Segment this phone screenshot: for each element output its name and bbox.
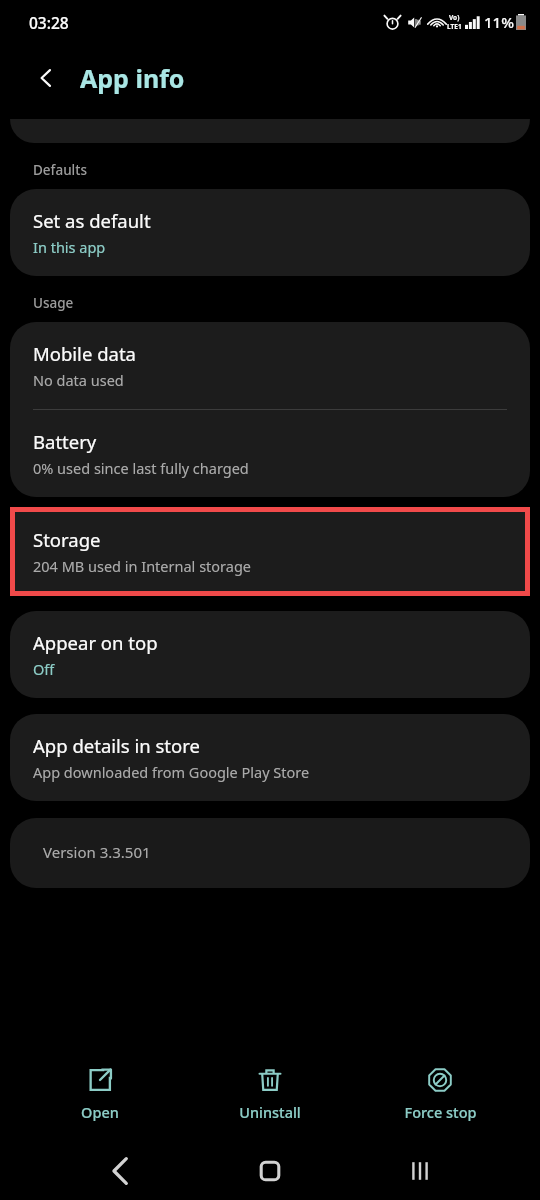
staticText: 204 MB used in Internal storage — [33, 556, 252, 576]
button[interactable]: Storage — [10, 507, 530, 596]
button[interactable]: Version 3.3.501 — [10, 818, 530, 888]
staticText: Appear on top — [33, 630, 158, 655]
staticText: Force stop — [404, 1102, 477, 1122]
staticText: Battery — [33, 429, 97, 454]
button[interactable]: Home — [241, 1142, 299, 1200]
button[interactable]: Recents — [391, 1142, 449, 1200]
button[interactable]: Battery — [10, 410, 530, 497]
button[interactable]: Set as default — [10, 189, 530, 276]
button[interactable]: Open — [30, 1059, 170, 1130]
staticText: 11% — [484, 12, 514, 32]
staticText: 0% used since last fully charged — [33, 458, 249, 478]
staticText: App details in store — [33, 733, 200, 758]
staticText: In this app — [33, 237, 106, 257]
staticText: App downloaded from Google Play Store — [33, 762, 310, 782]
staticText: App info — [80, 61, 185, 95]
staticText: Vo) — [449, 13, 460, 22]
button[interactable]: Uninstall — [200, 1059, 340, 1130]
staticText: Uninstall — [239, 1102, 301, 1122]
staticText: LTE1 — [447, 22, 462, 31]
staticText: Open — [81, 1102, 119, 1122]
staticText: Mobile data — [33, 341, 136, 366]
button[interactable]: Back — [26, 58, 66, 98]
button[interactable]: Back — [92, 1142, 150, 1200]
staticText: Storage — [33, 527, 101, 552]
staticText: Version 3.3.501 — [43, 842, 151, 862]
staticText: Defaults — [33, 161, 87, 179]
staticText: 03:28 — [29, 12, 69, 33]
button[interactable]: App details in store — [10, 714, 530, 801]
staticText: Usage — [33, 294, 74, 312]
button[interactable] — [10, 119, 530, 143]
staticText: No data used — [33, 370, 124, 390]
staticText: Off — [33, 659, 55, 679]
button[interactable]: Mobile data — [10, 322, 530, 409]
button[interactable]: Appear on top — [10, 611, 530, 698]
staticText: Set as default — [33, 208, 151, 233]
button[interactable]: Force stop — [370, 1059, 510, 1130]
